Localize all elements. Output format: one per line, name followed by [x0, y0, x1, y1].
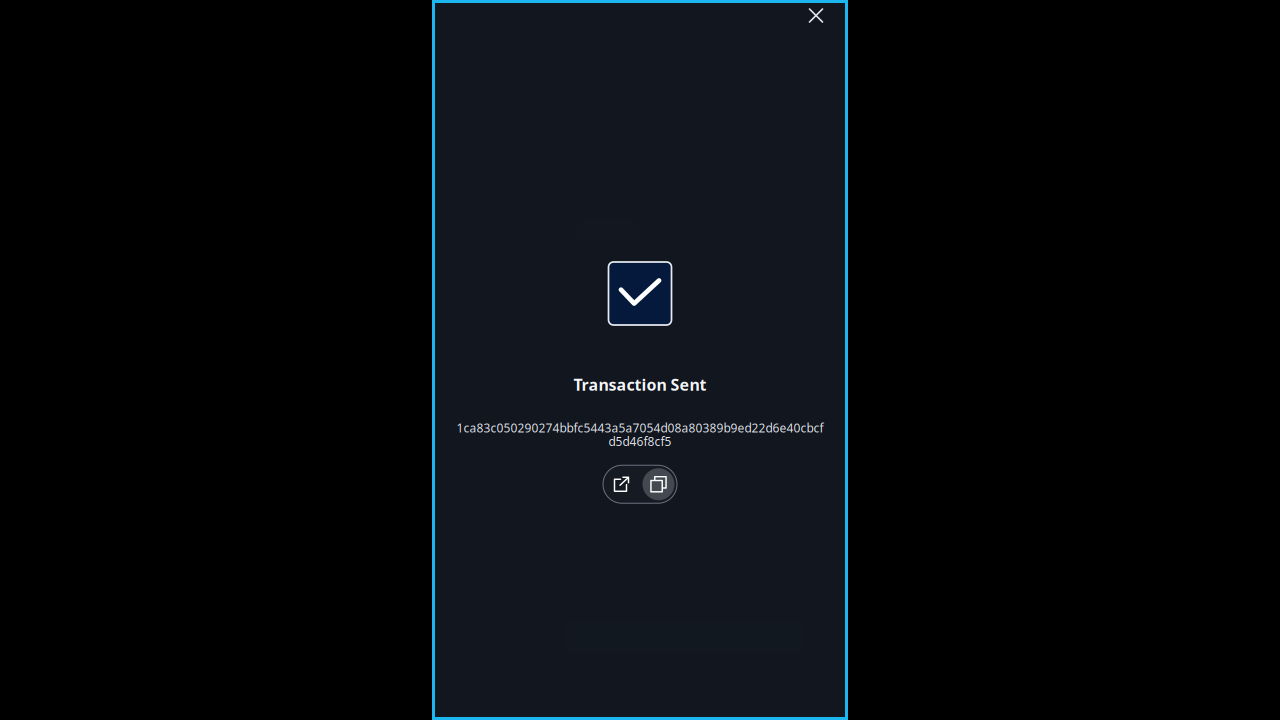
button[interactable]: Copy transaction id [640, 465, 677, 503]
button[interactable]: Open transaction in explorer [603, 465, 640, 503]
staticText: 1ca83c050290274bbfc5443a5a7054d08a80389b… [456, 420, 823, 436]
staticText: Transaction Sent [573, 374, 706, 395]
staticText: d5d46f8cf5 [608, 433, 671, 449]
button[interactable]: Close [787, 3, 845, 28]
